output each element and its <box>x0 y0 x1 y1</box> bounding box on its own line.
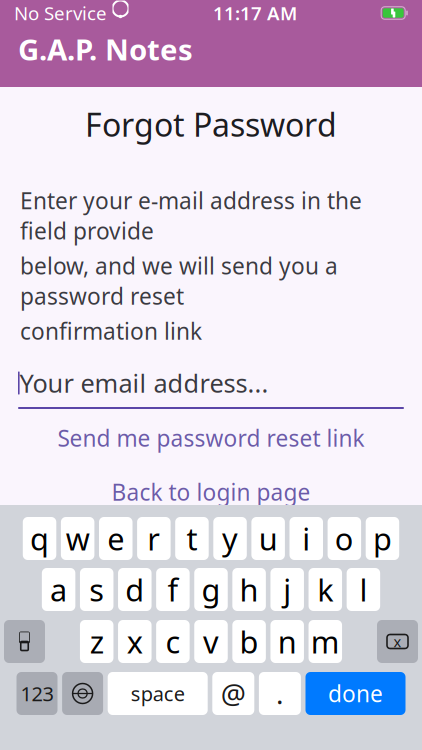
button[interactable]: p <box>366 517 399 560</box>
staticText: Send me password reset link <box>57 423 364 453</box>
staticText: . <box>276 675 284 712</box>
button[interactable]: Delete <box>377 620 418 663</box>
staticText: z <box>90 621 104 662</box>
staticText: confirmation link <box>20 316 202 346</box>
button[interactable]: Next keyboard <box>62 672 103 715</box>
button[interactable]: g <box>194 568 228 611</box>
staticText: q <box>30 518 49 559</box>
staticText: n <box>278 621 297 662</box>
button[interactable]: n <box>270 620 304 663</box>
staticText: 123 <box>20 680 53 707</box>
button[interactable]: 123 <box>16 672 57 715</box>
staticText: e <box>107 518 124 559</box>
button[interactable]: s <box>80 568 113 611</box>
button[interactable]: Back to login page <box>0 475 422 509</box>
staticText: c <box>165 621 180 662</box>
staticText: G.A.P. Notes <box>18 29 193 68</box>
button[interactable]: k <box>308 568 342 611</box>
button[interactable]: d <box>118 568 151 611</box>
staticText: s <box>89 569 104 610</box>
staticText: v <box>203 621 219 662</box>
staticText: below, and we will send you a password r… <box>20 251 338 311</box>
staticText: l <box>359 569 367 610</box>
staticText: Back to login page <box>111 477 310 507</box>
staticText: space <box>131 680 185 707</box>
staticText: done <box>328 678 383 708</box>
button[interactable]: space <box>108 672 208 715</box>
button[interactable]: Shift <box>4 620 45 663</box>
button[interactable]: Send me password reset link <box>0 421 422 455</box>
staticText: y <box>222 518 238 559</box>
button[interactable]: @ <box>212 672 254 715</box>
staticText: b <box>240 621 259 662</box>
button[interactable]: w <box>61 517 94 560</box>
button[interactable]: f <box>156 568 190 611</box>
staticText: i <box>302 518 310 559</box>
staticText: u <box>259 518 278 559</box>
staticText: x <box>393 632 401 651</box>
button[interactable]: m <box>308 620 342 663</box>
staticText: @ <box>221 675 246 712</box>
button[interactable]: z <box>80 620 113 663</box>
button[interactable]: h <box>232 568 266 611</box>
staticText: Enter your e-mail address in the field p… <box>20 185 362 246</box>
staticText: p <box>373 518 392 559</box>
button[interactable]: y <box>213 517 247 560</box>
button[interactable]: b <box>232 620 266 663</box>
button[interactable]: done <box>305 672 405 715</box>
button[interactable]: e <box>99 517 132 560</box>
staticText: k <box>317 569 333 610</box>
staticText: x <box>127 621 143 662</box>
staticText: m <box>311 621 340 662</box>
button[interactable]: x <box>118 620 151 663</box>
staticText: f <box>167 569 178 610</box>
button[interactable]: u <box>251 517 285 560</box>
staticText: d <box>125 569 144 610</box>
button[interactable]: c <box>156 620 190 663</box>
staticText: r <box>147 518 160 559</box>
staticText: Your email address... <box>20 366 269 400</box>
button[interactable]: i <box>289 517 323 560</box>
staticText: a <box>50 569 67 610</box>
button[interactable]: j <box>270 568 304 611</box>
staticText: 11:17 AM <box>213 1 297 25</box>
staticText: o <box>335 518 354 559</box>
button[interactable]: r <box>137 517 171 560</box>
staticText: t <box>186 518 197 559</box>
button[interactable]: q <box>23 517 56 560</box>
staticText: j <box>283 569 291 610</box>
staticText: Forgot Password <box>85 103 337 145</box>
button[interactable]: t <box>175 517 209 560</box>
button[interactable]: o <box>328 517 361 560</box>
staticText: g <box>201 569 220 610</box>
button[interactable]: v <box>194 620 228 663</box>
staticText: h <box>240 569 259 610</box>
staticText: No Service <box>14 1 107 25</box>
staticText: w <box>66 518 90 559</box>
button[interactable]: . <box>259 672 301 715</box>
button[interactable]: a <box>42 568 75 611</box>
button[interactable]: l <box>347 568 380 611</box>
